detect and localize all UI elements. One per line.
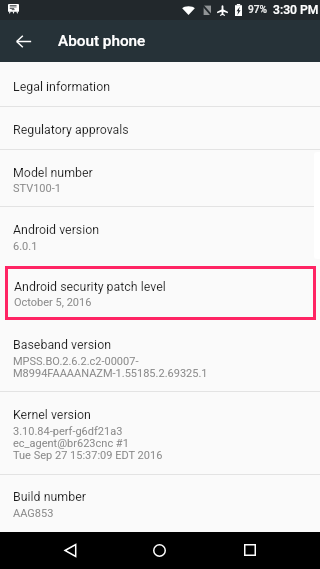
staticText: Build number xyxy=(13,489,86,504)
button[interactable]: Model number xyxy=(0,150,320,206)
button[interactable]: Regulatory approvals xyxy=(0,107,320,149)
button[interactable]: Navigate up xyxy=(6,24,40,58)
staticText: About phone xyxy=(58,32,146,50)
staticText: Kernel version xyxy=(13,407,91,422)
button[interactable]: Android security patch level xyxy=(5,266,316,320)
staticText: Tue Sep 27 15:37:09 EDT 2016 xyxy=(13,449,163,462)
staticText: October 5, 2016 xyxy=(14,296,92,309)
button[interactable]: Kernel version xyxy=(0,392,320,474)
button[interactable]: Back xyxy=(0,532,320,569)
staticText: 97% xyxy=(248,4,268,16)
staticText: STV100-1 xyxy=(13,182,61,195)
staticText: ec_agent@br623cnc #1 xyxy=(13,437,129,450)
staticText: M8994FAAAANAZM-1.55185.2.69325.1 xyxy=(13,367,208,380)
staticText: AAG853 xyxy=(13,507,54,520)
button[interactable]: Android version xyxy=(0,207,320,266)
staticText: 6.0.1 xyxy=(13,240,38,253)
staticText: Regulatory approvals xyxy=(13,122,129,137)
staticText: Android security patch level xyxy=(14,279,166,294)
staticText: 3.10.84-perf-g6df21a3 xyxy=(13,425,123,438)
button[interactable]: Build number xyxy=(0,475,320,532)
staticText: MPSS.BO.2.6.2.c2-00007- xyxy=(13,355,139,368)
button[interactable]: Recent apps xyxy=(0,532,320,569)
button[interactable]: Home xyxy=(0,532,320,569)
staticText: Model number xyxy=(13,165,93,180)
staticText: Baseband version xyxy=(13,337,112,352)
staticText: Android version xyxy=(13,222,100,237)
button[interactable]: Legal information xyxy=(0,62,320,106)
staticText: Legal information xyxy=(13,79,111,94)
button[interactable]: Baseband version xyxy=(0,320,320,391)
staticText: 3:30 PM xyxy=(273,3,319,17)
